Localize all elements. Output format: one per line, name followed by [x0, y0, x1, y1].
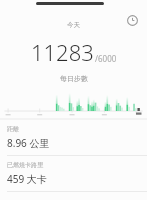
- staticText: 今天: [67, 21, 80, 29]
- button[interactable]: Step chart: [0, 90, 147, 118]
- button[interactable]: History: [124, 12, 140, 28]
- staticText: /6000: [95, 53, 117, 64]
- button[interactable]: 已燃燒卡路里: [0, 156, 147, 191]
- staticText: 距離: [7, 125, 19, 133]
- staticText: 459 大卡: [7, 172, 47, 186]
- staticText: 8.96 公里: [7, 136, 50, 150]
- staticText: 每日步數: [60, 74, 88, 83]
- button[interactable]: 距離: [0, 120, 147, 155]
- staticText: 11283: [31, 37, 94, 67]
- staticText: 已燃燒卡路里: [7, 161, 43, 169]
